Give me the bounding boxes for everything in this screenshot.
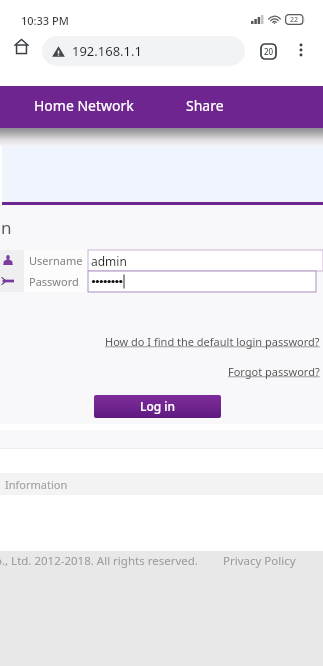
button[interactable]: 192.168.1.1: [42, 36, 245, 66]
button[interactable]: Home Network: [21, 84, 147, 126]
button[interactable]: [88, 271, 316, 292]
staticText: 192.168.1.1: [72, 42, 142, 60]
button[interactable]: How do I find the default login password…: [105, 334, 320, 349]
staticText: o., Ltd. 2012-2018. All rights reserved.: [0, 553, 198, 569]
button[interactable]: Home: [7, 32, 35, 60]
staticText: Username: [29, 253, 83, 268]
staticText: Password: [29, 274, 79, 289]
button[interactable]: Share: [173, 84, 237, 126]
staticText: Privacy Policy: [223, 553, 296, 569]
button[interactable]: admin: [88, 250, 323, 271]
staticText: Home Network: [34, 96, 134, 115]
staticText: 22: [290, 15, 299, 25]
button[interactable]: Tabs: [254, 37, 282, 65]
button[interactable]: Privacy Policy: [223, 553, 296, 569]
staticText: Share: [186, 96, 224, 115]
staticText: 10:33 PM: [21, 13, 69, 28]
staticText: Information: [5, 477, 68, 492]
button[interactable]: Log in: [94, 395, 221, 418]
staticText: n: [1, 216, 12, 239]
staticText: admin: [91, 253, 127, 269]
button[interactable]: Forgot password?: [228, 364, 320, 379]
staticText: How do I find the default login password…: [105, 334, 320, 349]
staticText: Forgot password?: [228, 364, 320, 379]
staticText: Log in: [140, 398, 176, 414]
staticText: 20: [264, 46, 274, 57]
button[interactable]: More options: [288, 37, 314, 63]
